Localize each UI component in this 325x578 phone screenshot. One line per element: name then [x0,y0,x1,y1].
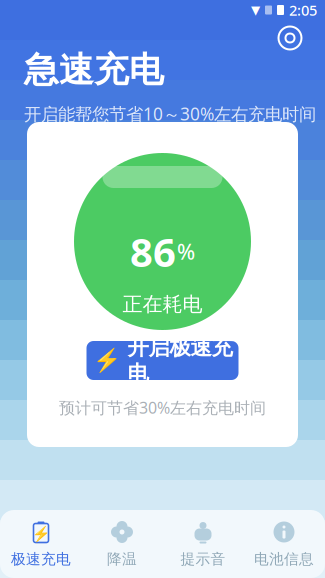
staticText: 开启极速充电 [127,334,232,387]
staticText: ⚡ [32,526,50,542]
staticText: 极速充电 [11,550,71,568]
staticText: 2:05 [289,0,317,20]
button[interactable]: 设置 [273,21,307,55]
staticText: 电池信息 [254,550,314,568]
staticText: % [177,237,195,266]
staticText: 预计可节省30%左右充电时间 [59,397,266,418]
staticText: ⚡ [92,348,120,373]
staticText: 急速充电 [24,49,164,91]
button[interactable]: ⚡ [86,341,238,380]
staticText: 提示音 [180,550,225,568]
staticText: 降温 [107,550,137,568]
button[interactable]: 降温 [81,510,162,578]
staticText: 86 [130,225,176,278]
button[interactable]: 提示音 [162,510,243,578]
staticText: ▼ [251,3,260,17]
button[interactable]: ⚡ [0,510,81,578]
staticText: 正在耗电 [122,292,202,317]
staticText: 开启能帮您节省10～30%左右充电时间 [24,102,316,125]
button[interactable]: 电池信息 [243,510,324,578]
